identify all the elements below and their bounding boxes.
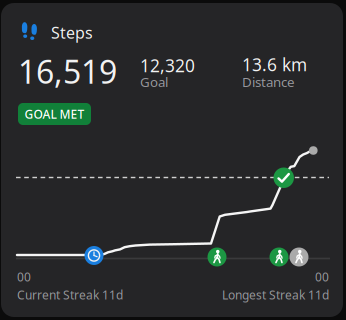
staticText: Longest Streak 11d — [222, 287, 329, 303]
staticText: Goal — [140, 73, 168, 91]
staticText: 00 — [315, 269, 329, 285]
staticText: 13.6 km — [242, 53, 307, 76]
staticText: 00 — [17, 269, 31, 285]
staticText: 16,519 — [18, 50, 117, 92]
staticText: Steps — [51, 22, 93, 43]
staticText: GOAL MET — [24, 106, 84, 122]
staticText: 12,320 — [140, 54, 195, 77]
button[interactable]: GOAL MET — [18, 103, 91, 125]
staticText: Distance — [242, 73, 295, 91]
staticText: Current Streak 11d — [17, 287, 123, 303]
